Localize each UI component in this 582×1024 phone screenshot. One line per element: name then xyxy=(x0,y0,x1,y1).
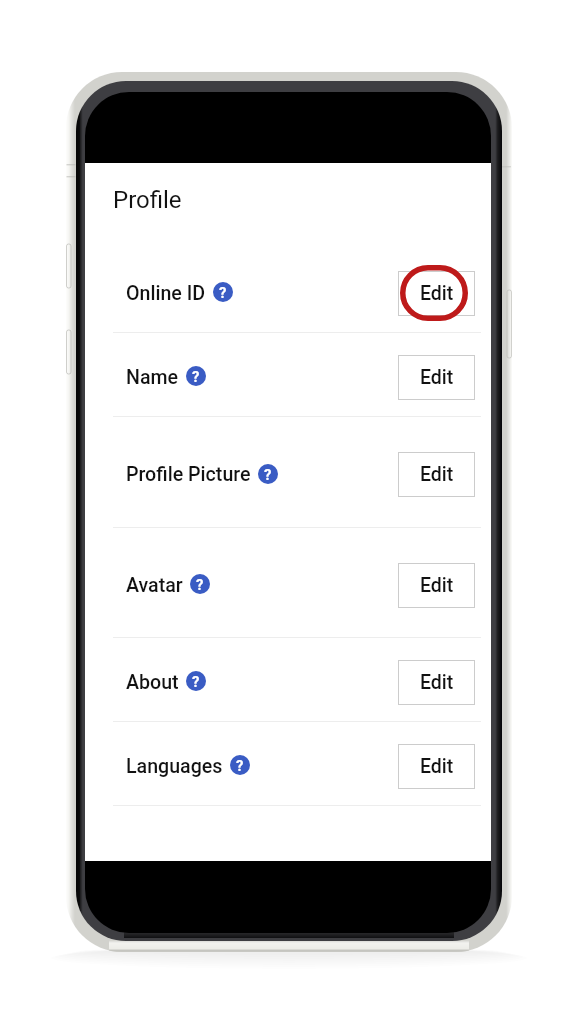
staticText: About xyxy=(126,671,179,694)
staticText: Edit xyxy=(420,671,454,694)
staticText: Edit xyxy=(420,574,454,597)
button[interactable]: Languages xyxy=(113,722,481,806)
button[interactable]: Avatar xyxy=(113,528,481,638)
button[interactable]: Name xyxy=(113,333,481,417)
staticText: ? xyxy=(196,576,204,593)
staticText: Profile Picture xyxy=(126,463,251,486)
staticText: Name xyxy=(126,366,179,389)
button[interactable]: Help about Avatar xyxy=(190,574,210,594)
button[interactable]: Edit xyxy=(398,744,475,789)
button[interactable]: Help about About xyxy=(186,671,206,691)
staticText: Edit xyxy=(420,463,454,486)
button[interactable]: Edit xyxy=(398,271,475,316)
staticText: Profile xyxy=(113,186,182,214)
staticText: Edit xyxy=(420,366,454,389)
button[interactable]: Edit xyxy=(398,355,475,400)
staticText: ? xyxy=(192,673,200,690)
staticText: Edit xyxy=(420,282,454,305)
button[interactable]: Edit xyxy=(398,660,475,705)
staticText: Avatar xyxy=(126,574,183,597)
staticText: ? xyxy=(219,284,227,301)
staticText: ? xyxy=(192,368,200,385)
button[interactable]: About xyxy=(113,638,481,722)
button[interactable]: Help about Name xyxy=(186,366,206,386)
staticText: Online ID xyxy=(126,282,206,305)
button[interactable]: Help about Languages xyxy=(230,755,250,775)
button[interactable]: Profile Picture xyxy=(113,417,481,528)
button[interactable]: Help about Profile Picture xyxy=(258,464,278,484)
button[interactable]: Edit xyxy=(398,563,475,608)
button[interactable]: Help about Online ID xyxy=(213,282,233,302)
button[interactable]: Edit xyxy=(398,452,475,497)
staticText: Edit xyxy=(420,755,454,778)
staticText: ? xyxy=(236,757,244,774)
staticText: Languages xyxy=(126,755,223,778)
staticText: ? xyxy=(264,466,272,483)
button[interactable]: Online ID xyxy=(113,249,481,333)
